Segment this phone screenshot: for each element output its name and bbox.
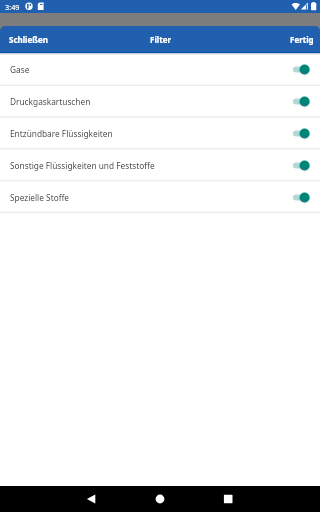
staticText: Entzündbare Flüssigkeiten [10, 128, 113, 139]
button[interactable]: Gase [0, 53, 320, 85]
staticText: 3:49 [5, 2, 20, 12]
staticText: Sonstige Flüssigkeiten und Feststoffe [10, 160, 155, 171]
button[interactable]: Fertig [282, 26, 320, 53]
button[interactable]: Schließen [0, 26, 57, 53]
button[interactable]: Filter Gase einschalten [293, 53, 320, 85]
button[interactable]: Home [140, 486, 180, 512]
staticText: Fertig [290, 34, 314, 45]
staticText: Gase [10, 64, 30, 75]
button[interactable]: Sonstige Flüssigkeiten und Feststoffe [0, 149, 320, 181]
button[interactable]: Druckgaskartuschen [0, 85, 320, 117]
button[interactable]: Filter Entzündbare Flüssigkeiten einscha… [293, 117, 320, 149]
button[interactable]: Filter Spezielle Stoffe einschalten [293, 181, 320, 213]
button[interactable]: Spezielle Stoffe [0, 181, 320, 213]
staticText: Spezielle Stoffe [10, 192, 70, 203]
staticText: Schließen [9, 34, 48, 45]
staticText: Filter [150, 34, 171, 45]
button[interactable]: Filter Druckgaskartuschen einschalten [293, 85, 320, 117]
button[interactable]: Entzündbare Flüssigkeiten [0, 117, 320, 149]
staticText: Druckgaskartuschen [10, 96, 91, 107]
button[interactable]: Filter Sonstige Flüssigkeiten und Festst… [293, 149, 320, 181]
